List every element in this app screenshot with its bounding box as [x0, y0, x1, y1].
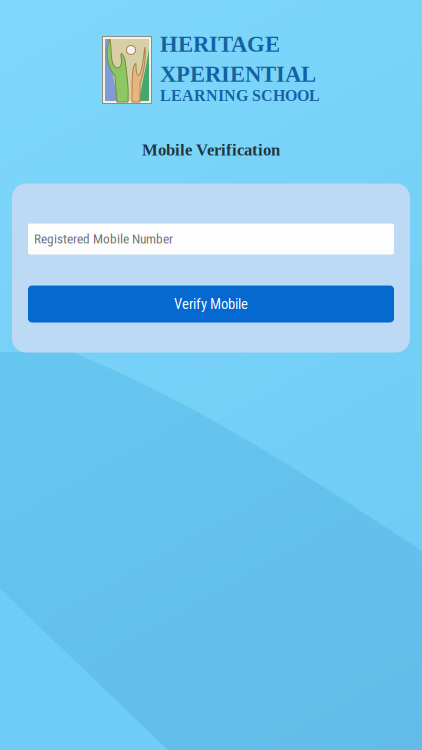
button[interactable]: Verify Mobile — [28, 285, 394, 322]
staticText: LEARNING SCHOOL — [160, 87, 320, 104]
staticText: HERITAGE — [160, 31, 280, 57]
staticText: XPERIENTIAL — [160, 62, 316, 87]
staticText: Registered Mobile Number — [34, 231, 173, 247]
staticText: Verify Mobile — [174, 295, 248, 313]
staticText: Mobile Verification — [142, 141, 280, 159]
